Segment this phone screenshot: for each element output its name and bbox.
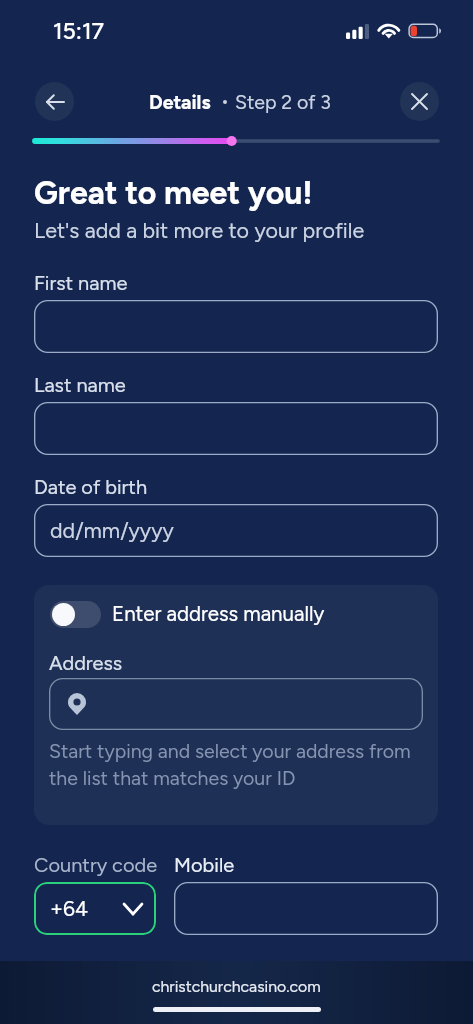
staticText: 15:17	[53, 17, 104, 45]
staticText: Address	[49, 651, 123, 675]
staticText: Country code	[34, 853, 158, 877]
staticText: Let's add a bit more to your profile	[34, 218, 365, 244]
staticText: Date of birth	[34, 475, 148, 499]
button[interactable]: +64	[34, 882, 156, 935]
button[interactable]: Enter address manually	[50, 601, 325, 628]
staticText: Step 2 of 3	[235, 90, 331, 113]
staticText: christchurchcasino.com	[152, 977, 321, 996]
button[interactable]: Close	[400, 82, 439, 121]
staticText: Start typing and select your address fro…	[49, 739, 427, 790]
staticText: Great to meet you!	[34, 174, 313, 212]
staticText: Mobile	[174, 853, 235, 877]
staticText: Enter address manually	[112, 602, 325, 627]
staticText: First name	[34, 271, 128, 295]
button[interactable]	[34, 402, 438, 455]
staticText: dd/mm/yyyy	[50, 518, 174, 544]
staticText: +64	[50, 896, 89, 921]
staticText: Details	[149, 90, 211, 113]
button[interactable]	[174, 882, 438, 935]
button[interactable]	[49, 678, 423, 730]
button[interactable]: dd/mm/yyyy	[34, 504, 438, 557]
button[interactable]: Back	[35, 82, 74, 121]
button[interactable]	[34, 300, 438, 353]
staticText: Last name	[34, 373, 126, 397]
